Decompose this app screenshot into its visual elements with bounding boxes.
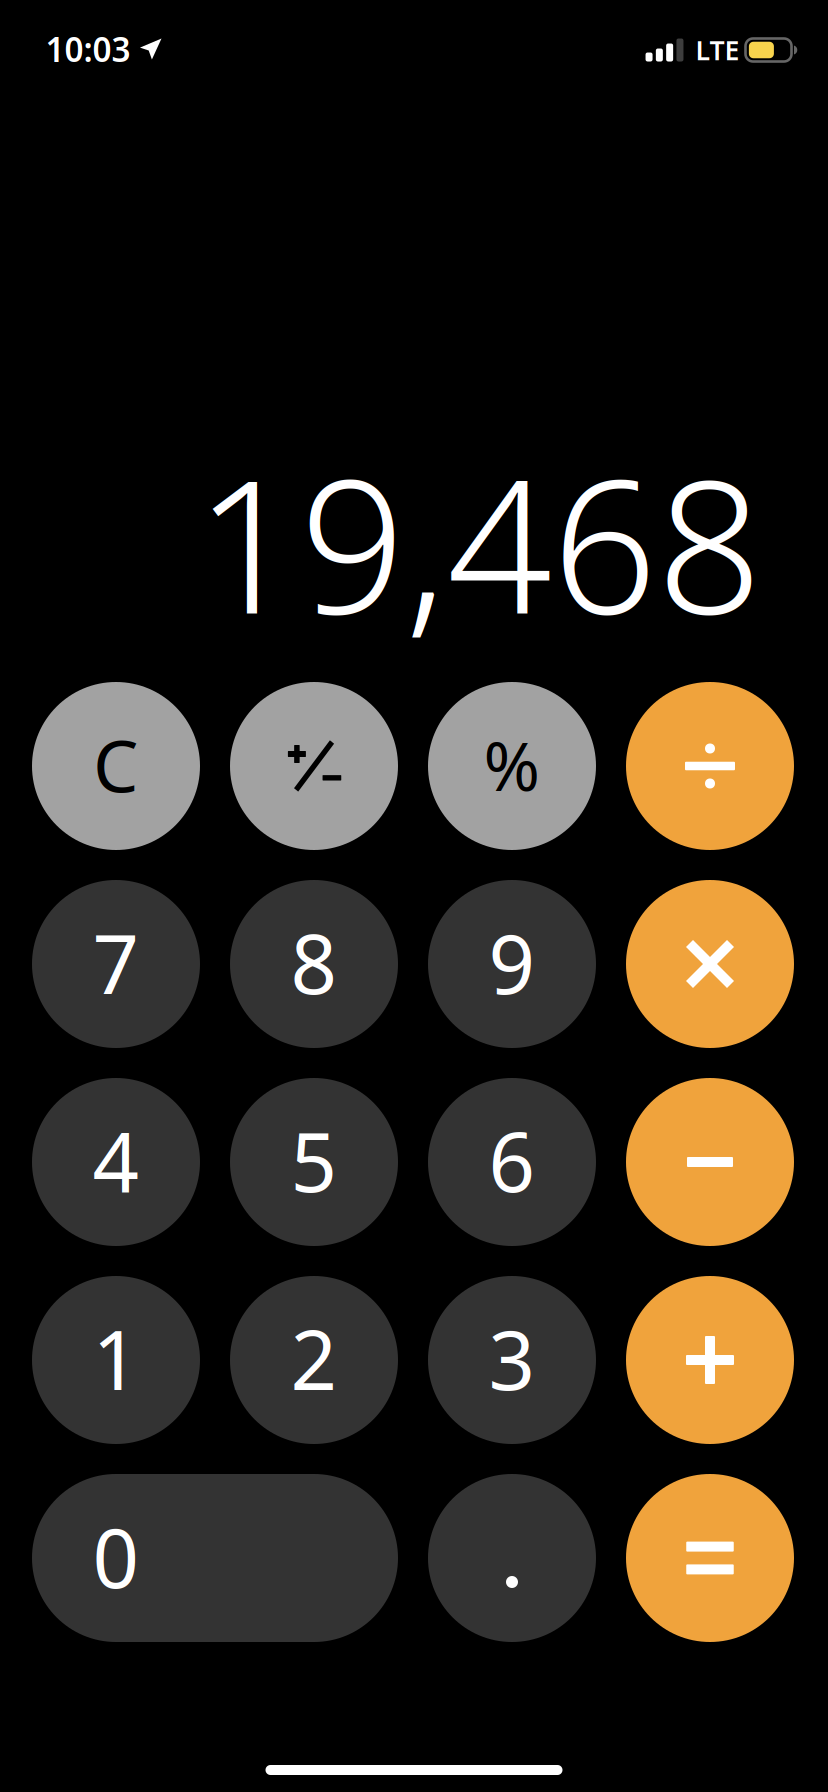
button[interactable]: Equals bbox=[626, 1474, 794, 1642]
button[interactable]: Decimal point bbox=[428, 1474, 596, 1642]
staticText: 0 bbox=[92, 1502, 139, 1610]
staticText: 3 bbox=[488, 1304, 535, 1412]
button[interactable]: 8 bbox=[230, 880, 398, 1048]
button[interactable]: Divide bbox=[626, 682, 794, 850]
button[interactable]: C bbox=[32, 682, 200, 850]
staticText: % bbox=[483, 719, 540, 810]
staticText: 1 bbox=[92, 1304, 139, 1412]
button[interactable]: 6 bbox=[428, 1078, 596, 1246]
button[interactable]: 2 bbox=[230, 1276, 398, 1444]
button[interactable]: 3 bbox=[428, 1276, 596, 1444]
button[interactable]: 4 bbox=[32, 1078, 200, 1246]
staticText: 5 bbox=[290, 1106, 337, 1214]
button[interactable]: 1 bbox=[32, 1276, 200, 1444]
staticText: 2 bbox=[290, 1304, 337, 1412]
staticText: C bbox=[93, 717, 139, 812]
button[interactable]: Add bbox=[626, 1276, 794, 1444]
button[interactable]: 7 bbox=[32, 880, 200, 1048]
button[interactable]: 0 bbox=[32, 1474, 398, 1642]
button[interactable]: Subtract bbox=[626, 1078, 794, 1246]
button[interactable]: 5 bbox=[230, 1078, 398, 1246]
staticText: 8 bbox=[290, 908, 337, 1016]
staticText: 9 bbox=[488, 908, 535, 1016]
staticText: 7 bbox=[92, 908, 139, 1016]
staticText: LTE bbox=[695, 32, 739, 68]
staticText: 10:03 bbox=[45, 27, 130, 71]
button[interactable]: Toggle sign bbox=[230, 682, 398, 850]
staticText: 4 bbox=[92, 1106, 139, 1214]
staticText: 19,468 bbox=[195, 420, 762, 664]
button[interactable]: 9 bbox=[428, 880, 596, 1048]
button[interactable]: Multiply bbox=[626, 880, 794, 1048]
button[interactable]: % bbox=[428, 682, 596, 850]
staticText: 6 bbox=[488, 1106, 535, 1214]
